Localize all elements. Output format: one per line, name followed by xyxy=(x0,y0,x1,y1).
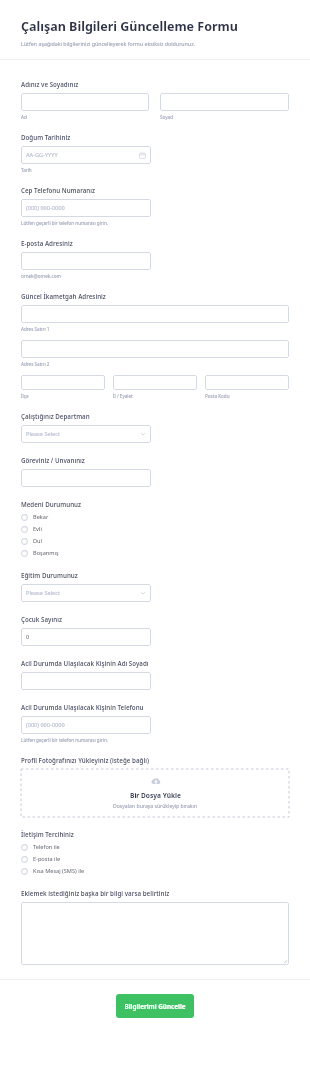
staticText: Evli xyxy=(33,525,42,533)
staticText: E-posta ile xyxy=(33,855,61,863)
button[interactable] xyxy=(21,340,289,358)
staticText: Lütfen geçerli bir telefon numarası giri… xyxy=(21,220,108,226)
staticText: Please Select xyxy=(26,589,60,597)
staticText: Cep Telefonu Numaranız xyxy=(21,186,96,194)
staticText: Boşanmış xyxy=(33,549,59,557)
staticText: Eğitim Durumunuz xyxy=(21,571,78,579)
button[interactable] xyxy=(21,672,151,690)
button[interactable]: AA-GG-YYYY xyxy=(21,146,151,164)
staticText: Dosyaları buraya sürükleyip bırakın xyxy=(113,803,198,810)
staticText: Lütfen aşağıdaki bilgilerinizi güncelley… xyxy=(21,40,196,47)
button[interactable]: Boşanmış xyxy=(21,547,289,559)
staticText: (000) 000-0000 xyxy=(26,721,65,729)
staticText: Göreviniz / Unvanınız xyxy=(21,456,85,464)
staticText: Dul xyxy=(33,537,42,545)
staticText: Medeni Durumunuz xyxy=(21,500,82,508)
button[interactable]: Bilgilerimi Güncelle xyxy=(116,994,194,1018)
staticText: Güncel İkametgah Adresiniz xyxy=(21,292,106,300)
staticText: Bilgilerimi Güncelle xyxy=(124,1002,186,1011)
staticText: Kısa Mesaj (SMS) ile xyxy=(33,867,85,875)
staticText: E-posta Adresiniz xyxy=(21,239,73,247)
staticText: ornek@ornek.com xyxy=(21,273,61,279)
button[interactable]: (000) 000-0000 xyxy=(21,716,151,734)
staticText: Adınız ve Soyadınız xyxy=(21,80,79,88)
staticText: İl / Eyalet xyxy=(113,393,133,399)
staticText: AA-GG-YYYY xyxy=(26,151,58,159)
button[interactable]: Telefon ile xyxy=(21,841,289,853)
button[interactable] xyxy=(21,902,289,965)
staticText: İlçe xyxy=(21,393,29,399)
staticText: Telefon ile xyxy=(33,843,60,851)
staticText: Bekar xyxy=(33,513,49,521)
button[interactable]: E-posta ile xyxy=(21,853,289,865)
staticText: Lütfen geçerli bir telefon numarası giri… xyxy=(21,737,108,743)
staticText: İletişim Tercihiniz xyxy=(21,830,74,838)
staticText: Adres Satırı 2 xyxy=(21,361,50,367)
button[interactable] xyxy=(21,375,105,390)
staticText: Ad xyxy=(21,114,27,120)
button[interactable]: Evli xyxy=(21,523,289,535)
staticText: Acil Durumda Ulaşılacak Kişinin Adı Soya… xyxy=(21,659,149,667)
staticText: Çocuk Sayınız xyxy=(21,615,62,623)
button[interactable] xyxy=(205,375,289,390)
staticText: Acil Durumda Ulaşılacak Kişinin Telefonu xyxy=(21,703,144,711)
button[interactable] xyxy=(21,469,151,487)
staticText: Please Select xyxy=(26,430,60,438)
staticText: Profil Fotoğrafınızı Yükleyiniz (isteğe … xyxy=(21,756,149,764)
staticText: Eklemek istediğiniz başka bir bilgi vars… xyxy=(21,889,170,897)
button[interactable]: 0 xyxy=(21,628,151,646)
button[interactable]: (000) 000-0000 xyxy=(21,199,151,217)
button[interactable]: Kısa Mesaj (SMS) ile xyxy=(21,865,289,877)
button[interactable]: Please Select xyxy=(21,584,151,602)
staticText: Soyad xyxy=(160,114,173,120)
staticText: Tarih xyxy=(21,167,32,173)
button[interactable] xyxy=(160,93,289,111)
staticText: Adres Satırı 1 xyxy=(21,326,50,332)
staticText: Doğum Tarihiniz xyxy=(21,133,71,141)
staticText: Çalıştığınız Departman xyxy=(21,412,90,420)
button[interactable]: Dul xyxy=(21,535,289,547)
button[interactable]: Bekar xyxy=(21,511,289,523)
staticText: Posta Kodu xyxy=(205,393,230,399)
staticText: Bir Dosya Yükle xyxy=(130,791,181,800)
staticText: (000) 000-0000 xyxy=(26,204,65,212)
staticText: Çalışan Bilgileri Güncelleme Formu xyxy=(21,18,238,35)
button[interactable]: Bir Dosya Yükle xyxy=(21,769,289,817)
button[interactable] xyxy=(21,93,149,111)
button[interactable] xyxy=(21,252,151,270)
button[interactable] xyxy=(113,375,197,390)
button[interactable] xyxy=(21,305,289,323)
button[interactable]: Please Select xyxy=(21,425,151,443)
staticText: 0 xyxy=(26,633,30,641)
